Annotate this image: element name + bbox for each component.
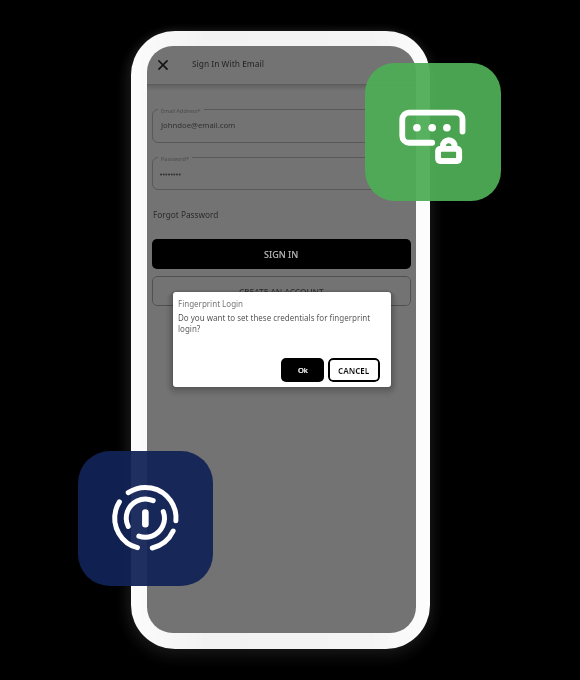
- button[interactable]: CREATE AN ACCOUNT: [152, 276, 411, 306]
- staticText: Sign In With Email: [192, 58, 264, 69]
- button[interactable]: Forgot Password: [153, 209, 219, 220]
- staticText: Forgot Password: [153, 209, 219, 220]
- button[interactable]: Password manager: [365, 63, 501, 201]
- button[interactable]: Close: [147, 46, 179, 83]
- staticText: Johndoe@email.com: [161, 120, 236, 130]
- staticText: CREATE AN ACCOUNT: [239, 286, 324, 297]
- button[interactable]: Fingerprint login: [78, 451, 213, 586]
- staticText: Password*: [161, 155, 189, 162]
- staticText: Fingerprint Login: [178, 298, 244, 309]
- staticText: CANCEL: [338, 365, 370, 376]
- staticText: Email Address*: [161, 107, 201, 114]
- staticText: SIGN IN: [264, 248, 299, 260]
- button[interactable]: Ok: [281, 358, 324, 382]
- staticText: Ok: [298, 365, 308, 375]
- button[interactable]: SIGN IN: [152, 239, 411, 269]
- button[interactable]: CANCEL: [328, 358, 380, 382]
- staticText: Do you want to set these credentials for…: [178, 312, 374, 334]
